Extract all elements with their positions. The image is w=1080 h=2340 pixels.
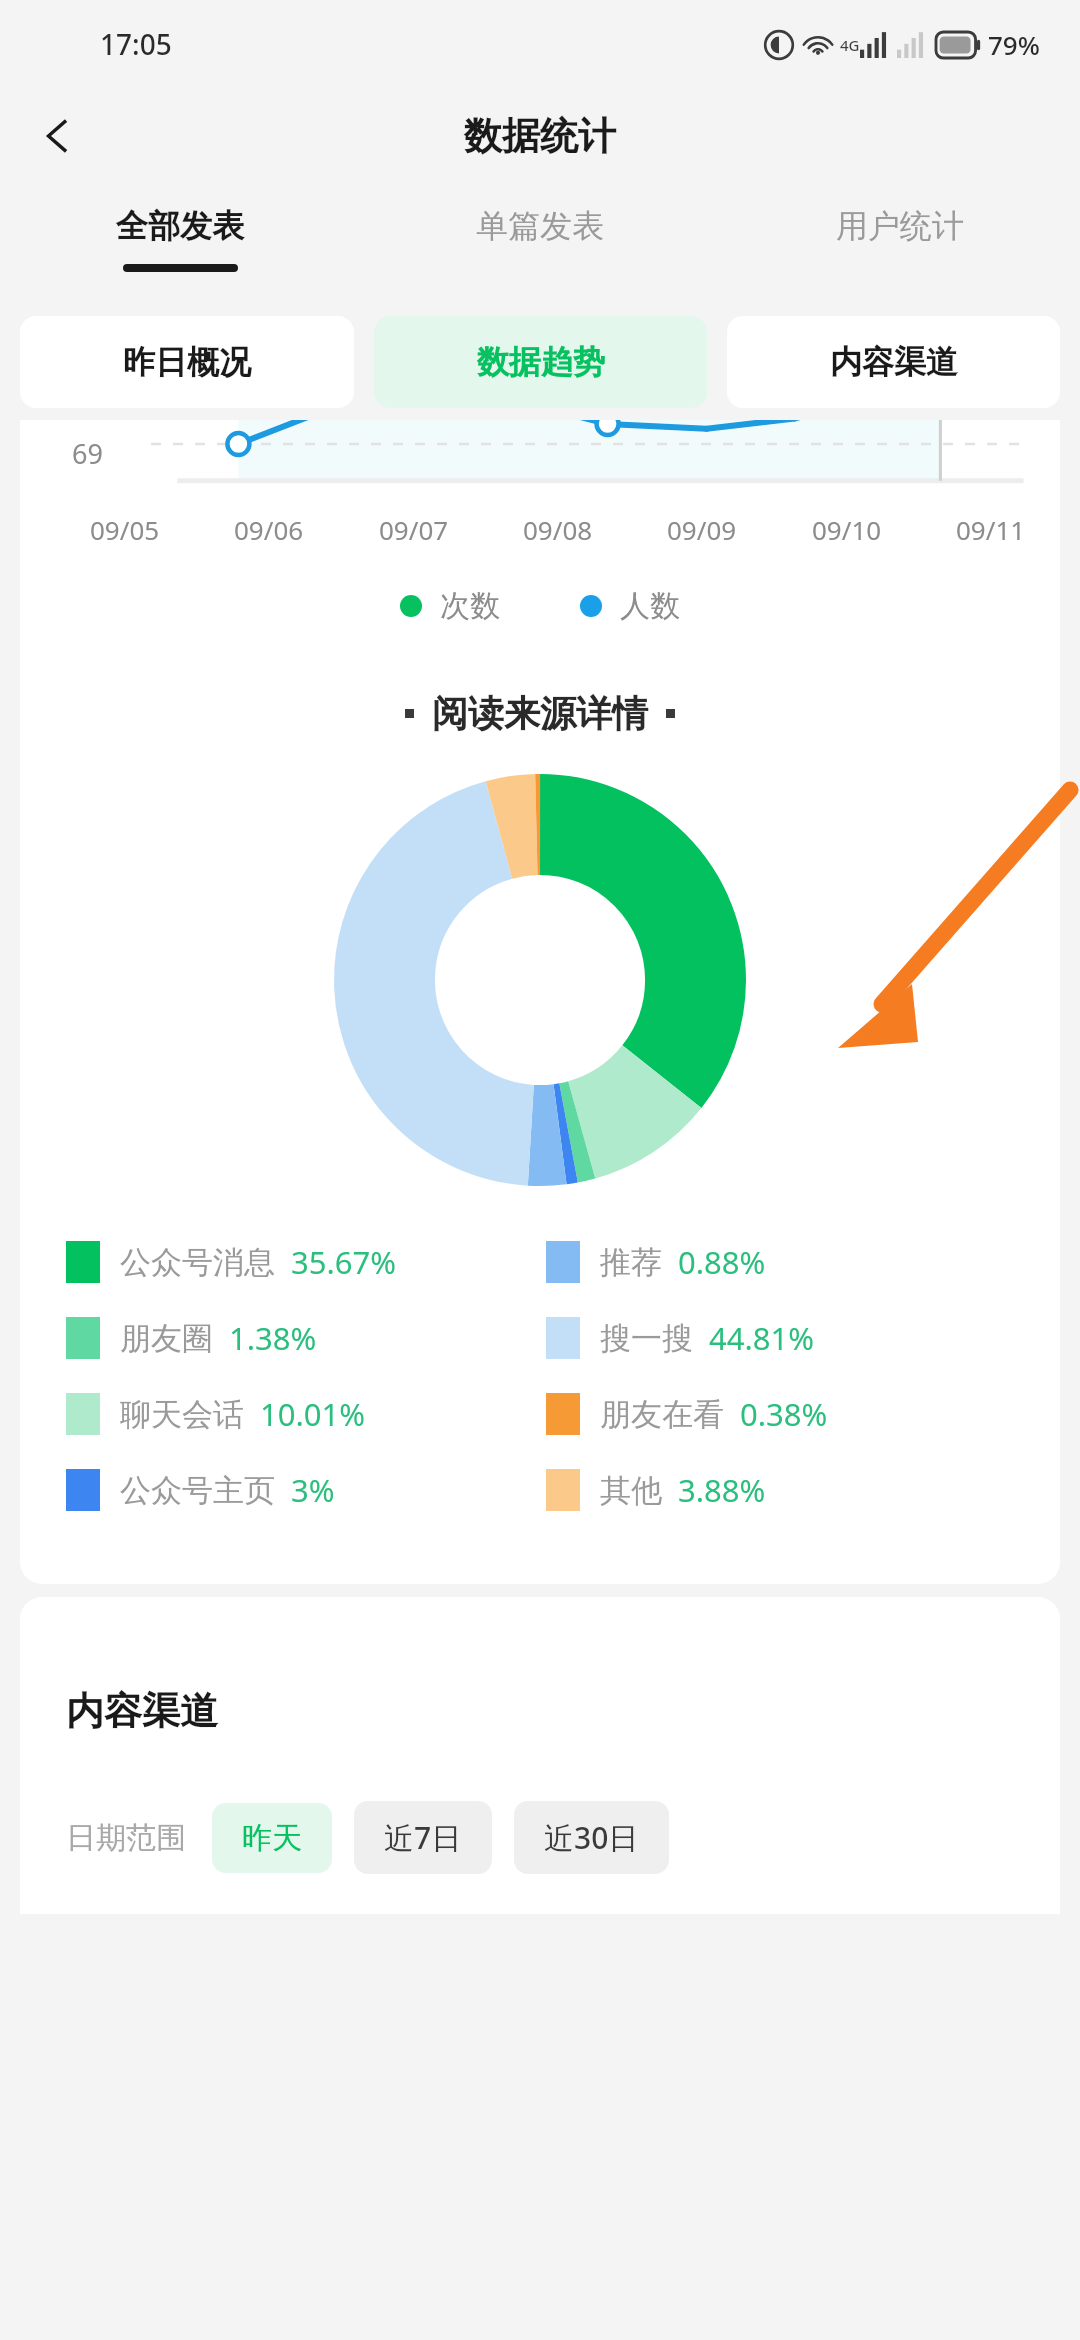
button[interactable]: 数据趋势	[374, 316, 707, 408]
staticText: 数据趋势	[477, 342, 605, 382]
staticText: 搜一搜	[600, 1319, 693, 1358]
button[interactable]: 用户统计	[720, 184, 1080, 302]
staticText: 公众号主页	[120, 1471, 275, 1510]
staticText: 人数	[620, 587, 680, 625]
staticText: 17:05	[100, 25, 172, 63]
staticText: 全部发表	[116, 206, 244, 246]
button[interactable]: 公众号主页	[66, 1469, 546, 1511]
staticText: 10.01%	[260, 1393, 365, 1435]
button[interactable]: 推荐	[546, 1241, 1026, 1283]
staticText: 内容渠道	[830, 342, 958, 382]
staticText: 昨天	[242, 1819, 302, 1857]
staticText: 09/06	[234, 512, 304, 547]
button[interactable]: 内容渠道	[727, 316, 1060, 408]
button[interactable]: 昨日概况	[20, 316, 354, 408]
button[interactable]: 近7日	[354, 1801, 492, 1874]
staticText: 朋友在看	[600, 1395, 724, 1434]
staticText: 3%	[291, 1469, 335, 1511]
staticText: 近30日	[544, 1817, 639, 1858]
staticText: 35.67%	[291, 1241, 396, 1283]
staticText: 数据统计	[464, 112, 616, 160]
staticText: 阅读来源详情	[432, 691, 648, 736]
staticText: 近7日	[384, 1817, 462, 1858]
staticText: 09/08	[523, 512, 593, 547]
staticText: 次数	[440, 587, 500, 625]
staticText: 09/05	[90, 512, 160, 547]
staticText: 推荐	[600, 1243, 662, 1282]
button[interactable]: 昨天	[212, 1803, 332, 1873]
button[interactable]: 公众号消息	[66, 1241, 546, 1283]
staticText: 0.38%	[740, 1393, 828, 1435]
button[interactable]: 聊天会话	[66, 1393, 546, 1435]
staticText: 1.38%	[229, 1317, 317, 1359]
staticText: 09/07	[379, 512, 449, 547]
button[interactable]: 朋友在看	[546, 1393, 1026, 1435]
staticText: 其他	[600, 1471, 662, 1510]
staticText: 朋友圈	[120, 1319, 213, 1358]
staticText: 昨日概况	[123, 342, 251, 382]
staticText: 0.88%	[678, 1241, 766, 1283]
staticText: 日期范围	[66, 1819, 186, 1857]
button[interactable]: 朋友圈	[66, 1317, 546, 1359]
staticText: 用户统计	[836, 206, 964, 246]
button[interactable]: 搜一搜	[546, 1317, 1026, 1359]
button[interactable]: 全部发表	[0, 184, 360, 302]
staticText: 3.88%	[678, 1469, 766, 1511]
staticText: 09/11	[956, 512, 1026, 547]
staticText: 聊天会话	[120, 1395, 244, 1434]
staticText: 09/10	[812, 512, 882, 547]
staticText: 单篇发表	[476, 206, 604, 246]
button[interactable]: 其他	[546, 1469, 1026, 1511]
staticText: 44.81%	[709, 1317, 814, 1359]
button[interactable]: Back	[22, 100, 94, 172]
staticText: 公众号消息	[120, 1243, 275, 1282]
button[interactable]: 近30日	[514, 1801, 669, 1874]
staticText: 4G	[840, 35, 860, 55]
staticText: 69	[72, 435, 103, 472]
button[interactable]: 单篇发表	[360, 184, 720, 302]
staticText: 内容渠道	[66, 1687, 218, 1735]
staticText: 09/09	[667, 512, 737, 547]
staticText: 79%	[988, 27, 1040, 62]
